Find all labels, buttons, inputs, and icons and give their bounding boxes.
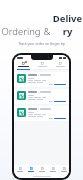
staticText: &	[42, 25, 52, 38]
button[interactable]: Track order	[54, 101, 66, 102]
button[interactable]	[51, 60, 69, 69]
other: Store	[17, 91, 26, 100]
button[interactable]: Store	[14, 106, 69, 121]
staticText: Delivery	[52, 12, 83, 38]
button[interactable]	[33, 60, 51, 69]
button[interactable]: Orders	[25, 165, 36, 174]
button[interactable]: Search	[36, 165, 47, 174]
button[interactable]: Store	[14, 89, 69, 104]
button[interactable]: Home	[14, 165, 25, 174]
button[interactable]: Activity	[47, 165, 58, 174]
button[interactable]: Track order	[54, 84, 66, 85]
staticText: Ordering	[0, 25, 42, 38]
button[interactable]: Track order	[54, 118, 66, 119]
button[interactable]: Store	[14, 72, 69, 87]
other: Store	[17, 74, 26, 83]
button[interactable]	[14, 60, 33, 69]
staticText: Track your order on finger tip	[18, 41, 65, 46]
other: Store	[17, 108, 26, 117]
button[interactable]: Profile	[58, 165, 69, 174]
